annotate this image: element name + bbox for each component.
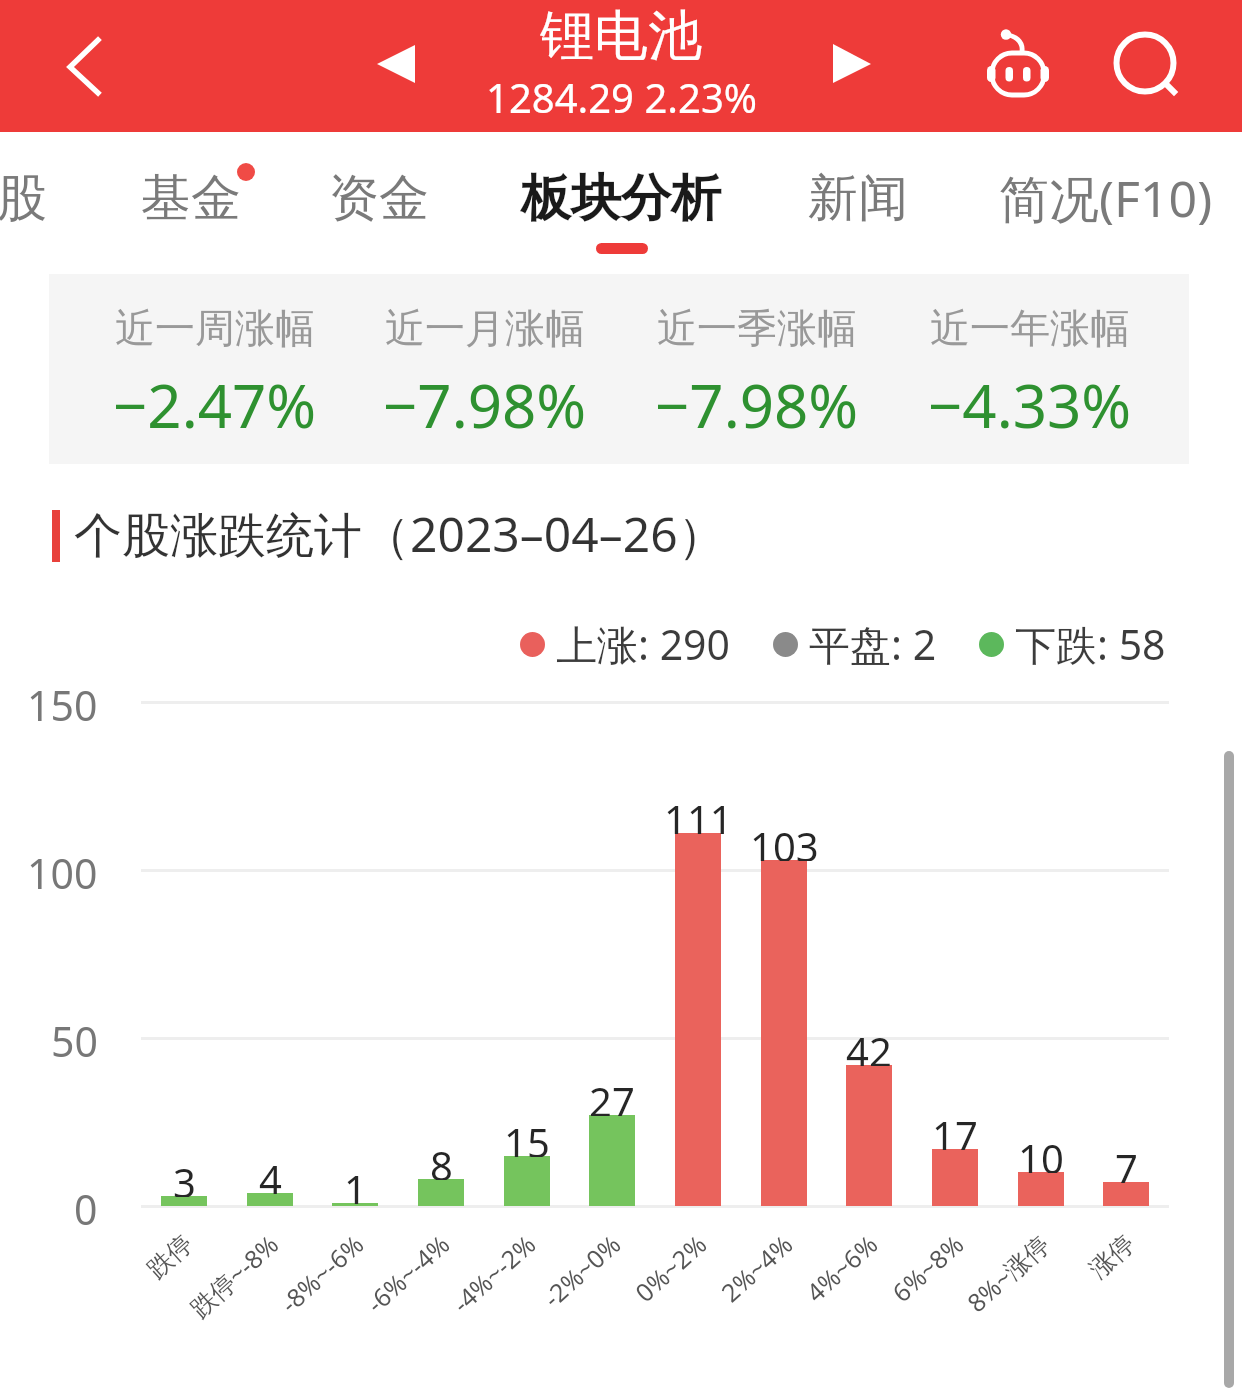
staticText: 7 — [1115, 1141, 1138, 1183]
staticText: 平盘: 2 — [809, 616, 937, 672]
staticText: 1284.29 2.23% — [486, 70, 757, 124]
button[interactable]: AI assistant — [962, 16, 1072, 126]
staticText: 近一年涨幅 — [930, 303, 1130, 353]
staticText: −2.47% — [113, 364, 317, 446]
button[interactable]: 下跌: 58 — [979, 614, 1166, 674]
button[interactable]: 4%~6%: 42 — [846, 1065, 892, 1206]
button[interactable]: 近一周涨幅 — [80, 274, 350, 466]
button[interactable]: -6%~-4%: 8 — [418, 1179, 464, 1206]
button[interactable]: -8%~-6%: 1 — [332, 1203, 378, 1206]
staticText: 42 — [846, 1024, 892, 1066]
button[interactable]: 涨停: 7 — [1103, 1182, 1149, 1206]
staticText: 近一周涨幅 — [115, 303, 315, 353]
button[interactable]: 6%~8%: 17 — [932, 1149, 978, 1206]
button[interactable]: -2%~0%: 27 — [589, 1115, 635, 1206]
staticText: -6%~-4% — [359, 1227, 456, 1319]
button[interactable]: 股 — [0, 159, 50, 237]
staticText: −4.33% — [928, 364, 1132, 446]
staticText: 50 — [51, 1013, 98, 1057]
button[interactable]: 近一年涨幅 — [895, 274, 1165, 466]
staticText: 3 — [173, 1155, 196, 1197]
button[interactable]: Back — [26, 10, 138, 122]
staticText: 6%~8% — [884, 1227, 970, 1309]
staticText: 103 — [750, 819, 819, 861]
staticText: 涨停 — [1083, 1228, 1141, 1285]
button[interactable]: 近一季涨幅 — [622, 274, 892, 466]
button[interactable]: 上涨: 290 — [520, 614, 731, 674]
button[interactable]: 2%~4%: 103 — [761, 860, 807, 1206]
button[interactable]: 近一月涨幅 — [350, 274, 620, 466]
button[interactable]: 跌停~-8%: 4 — [247, 1193, 293, 1206]
staticText: 板块分析 — [521, 167, 721, 230]
staticText: 个股涨跌统计（2023–04–26） — [74, 501, 726, 567]
button[interactable]: Previous sector — [347, 20, 439, 112]
staticText: 近一月涨幅 — [385, 303, 585, 353]
staticText: 27 — [589, 1074, 635, 1116]
button[interactable]: 新闻 — [805, 159, 911, 237]
staticText: -4%~-2% — [445, 1227, 542, 1319]
staticText: 4 — [259, 1152, 282, 1194]
button[interactable]: 个股涨跌统计（2023–04–26） — [74, 500, 726, 568]
staticText: 近一季涨幅 — [657, 303, 857, 353]
staticText: 4%~6% — [798, 1227, 884, 1309]
staticText: 111 — [664, 792, 733, 834]
staticText: 0 — [74, 1181, 98, 1225]
button[interactable]: 板块分析 — [518, 159, 724, 237]
button[interactable]: -4%~-2%: 15 — [504, 1156, 550, 1206]
button[interactable]: 8%~涨停: 10 — [1018, 1172, 1064, 1206]
staticText: 资金 — [329, 167, 429, 230]
button[interactable]: Next sector — [805, 20, 897, 112]
button[interactable]: 简况(F10) — [976, 159, 1236, 237]
staticText: 锂电池 — [540, 2, 702, 70]
button[interactable]: 平盘: 2 — [773, 614, 937, 674]
staticText: -2%~0% — [536, 1227, 627, 1314]
staticText: 股 — [0, 167, 47, 230]
staticText: 100 — [27, 845, 98, 889]
button[interactable]: 基金 — [138, 159, 244, 237]
staticText: 10 — [1018, 1131, 1064, 1173]
staticText: 上涨: 290 — [556, 616, 731, 672]
staticText: 8%~涨停 — [959, 1227, 1056, 1319]
button[interactable]: 资金 — [326, 159, 432, 237]
staticText: 简况(F10) — [999, 164, 1213, 232]
staticText: 跌停 — [141, 1228, 199, 1285]
staticText: 1 — [344, 1162, 367, 1204]
staticText: 下跌: 58 — [1015, 616, 1166, 672]
staticText: -8%~-6% — [273, 1227, 370, 1319]
staticText: 2%~4% — [713, 1227, 799, 1309]
staticText: 17 — [932, 1108, 978, 1150]
staticText: 0%~2% — [627, 1227, 713, 1309]
staticText: 跌停~-8% — [182, 1227, 285, 1324]
button[interactable]: Search — [1090, 9, 1200, 119]
staticText: 基金 — [141, 167, 241, 230]
staticText: 150 — [27, 677, 98, 721]
button[interactable]: 跌停: 3 — [161, 1196, 207, 1206]
button[interactable]: 0%~2%: 111 — [675, 833, 721, 1206]
staticText: 8 — [430, 1138, 453, 1180]
staticText: 新闻 — [808, 167, 908, 230]
staticText: −7.98% — [655, 364, 859, 446]
staticText: 15 — [504, 1115, 550, 1157]
staticText: −7.98% — [383, 364, 587, 446]
